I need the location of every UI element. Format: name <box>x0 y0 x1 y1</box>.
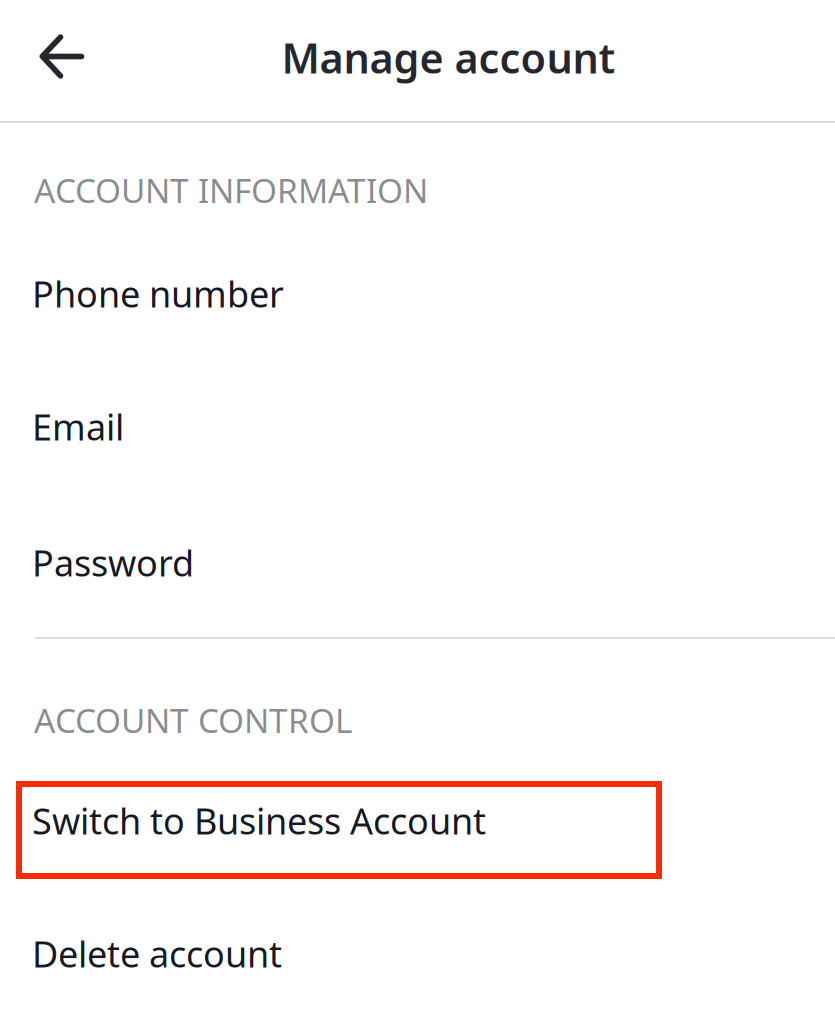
staticText: Delete account <box>32 930 282 977</box>
staticText: Password <box>32 539 194 586</box>
button[interactable]: Email <box>0 360 835 493</box>
button[interactable]: Delete account <box>0 887 835 1020</box>
staticText: Phone number <box>32 270 284 317</box>
staticText: ACCOUNT INFORMATION <box>34 168 428 212</box>
staticText: ACCOUNT CONTROL <box>34 698 352 742</box>
staticText: Switch to Business Account <box>32 797 486 844</box>
button[interactable]: Back <box>16 0 106 117</box>
staticText: Email <box>32 403 124 450</box>
button[interactable]: Password <box>0 496 835 629</box>
button[interactable]: Switch to Business Account <box>0 754 835 887</box>
button[interactable]: Phone number <box>0 227 835 360</box>
staticText: Manage account <box>281 30 615 85</box>
